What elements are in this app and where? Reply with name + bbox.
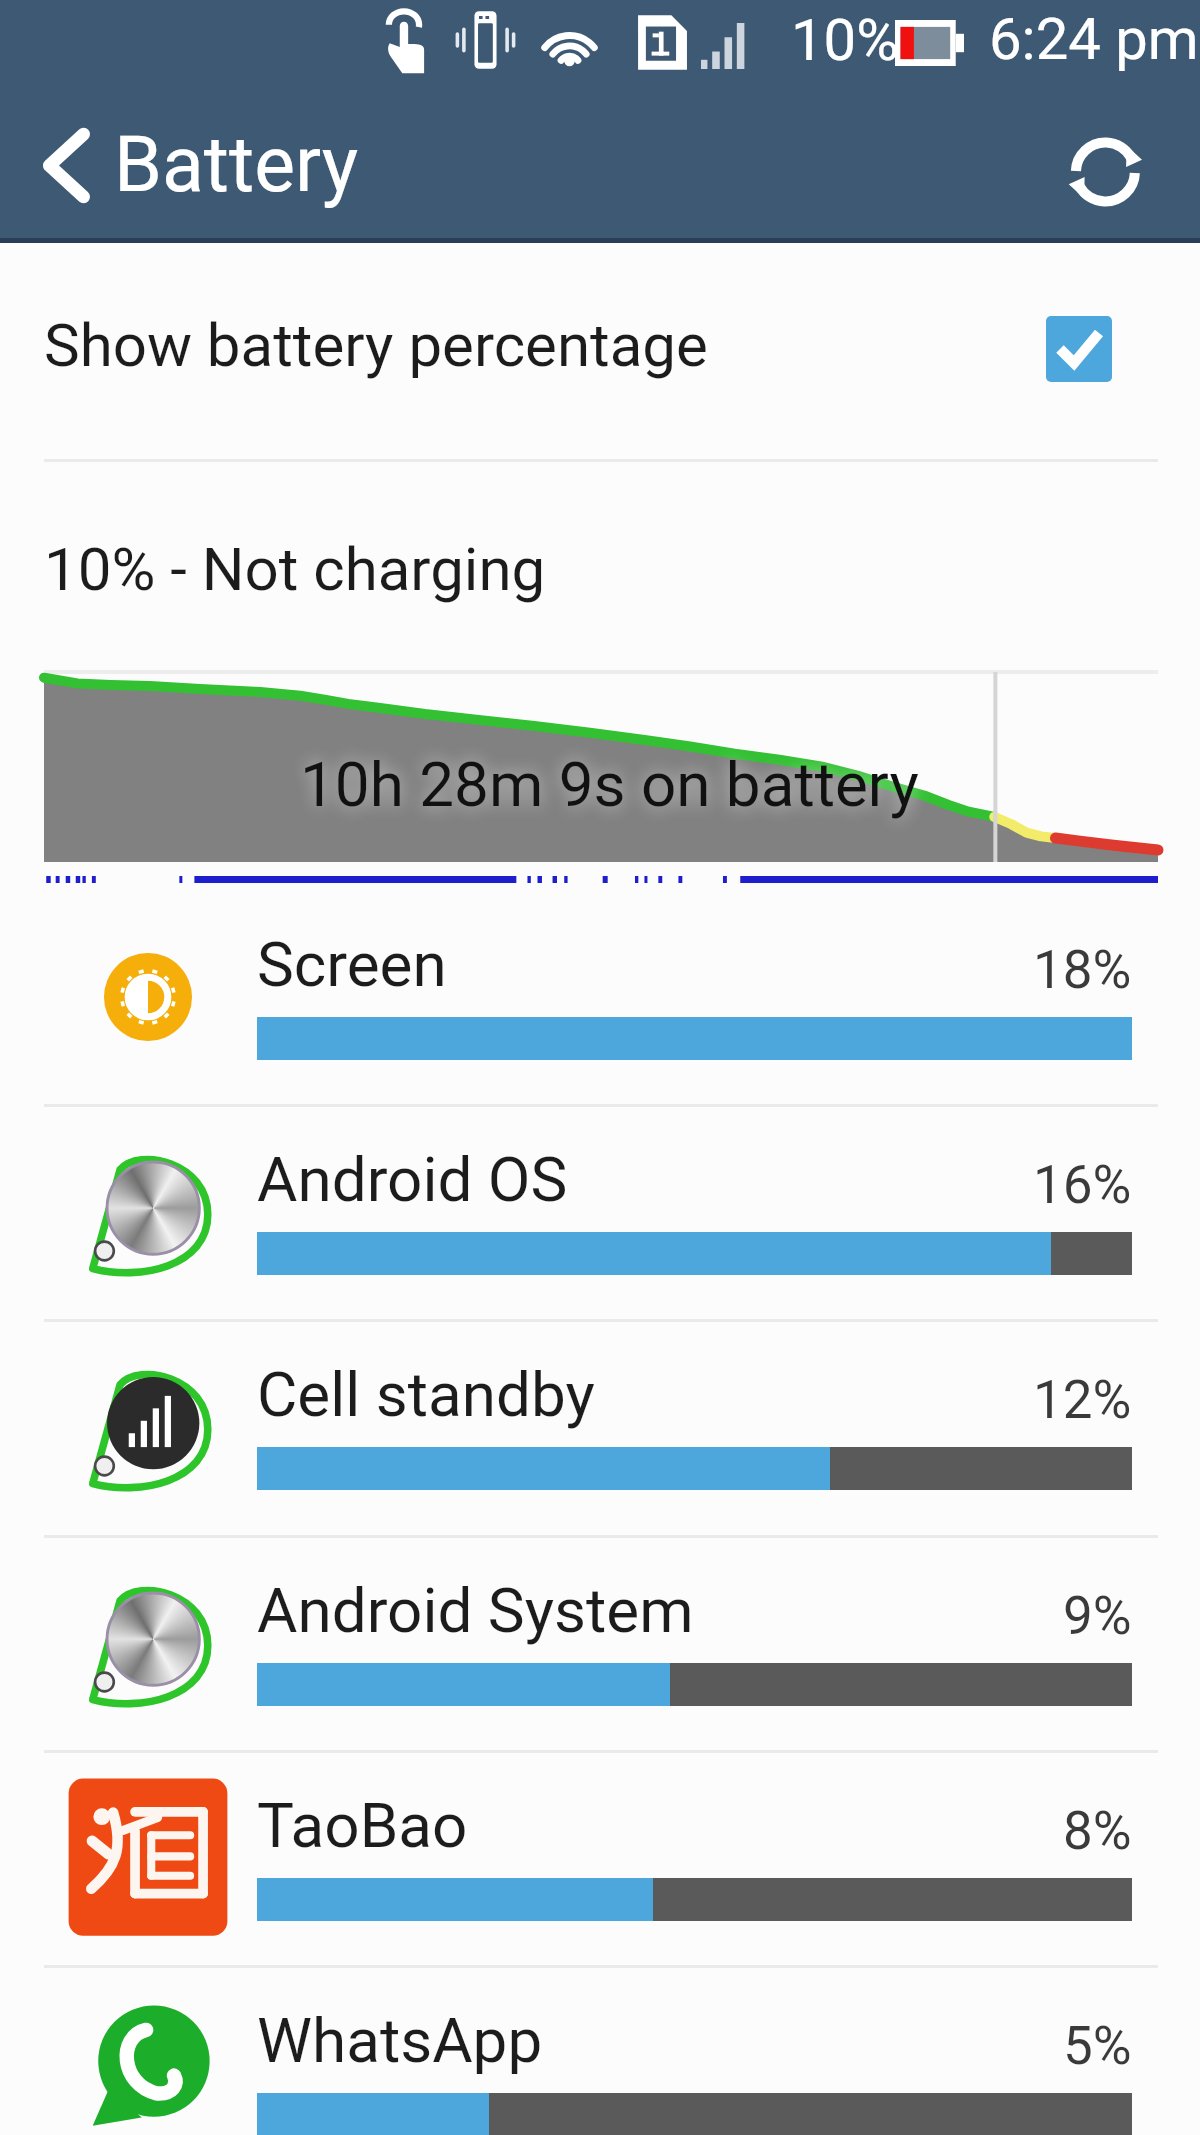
staticText: Cell standby xyxy=(257,1358,595,1431)
staticText: Show battery percentage xyxy=(44,310,708,380)
button[interactable]: WhatsApp xyxy=(0,1968,1200,2135)
staticText: 9% xyxy=(1063,1585,1132,1647)
staticText: 12% xyxy=(1033,1369,1132,1431)
button[interactable]: TaoBao xyxy=(0,1753,1200,1968)
button[interactable]: Show battery percentage xyxy=(0,243,1200,459)
staticText: 8% xyxy=(1063,1800,1132,1862)
staticText: 6:24 pm xyxy=(989,5,1199,73)
button[interactable]: Refresh xyxy=(1048,112,1168,232)
staticText: 16% xyxy=(1033,1154,1132,1216)
staticText: Screen xyxy=(257,928,447,1001)
button[interactable]: Android OS xyxy=(0,1107,1200,1322)
staticText: Battery xyxy=(114,120,359,210)
staticText: 5% xyxy=(1063,2015,1132,2077)
staticText: 10h 28m 9s on battery xyxy=(300,748,919,821)
staticText: 10% - Not charging xyxy=(44,534,546,604)
button[interactable]: Show battery percentage, checked xyxy=(1046,316,1112,382)
staticText: 18% xyxy=(1033,939,1132,1001)
button[interactable]: Cell standby xyxy=(0,1322,1200,1537)
staticText: TaoBao xyxy=(257,1789,468,1862)
button[interactable]: Screen xyxy=(0,892,1200,1107)
staticText: Android OS xyxy=(257,1143,568,1216)
staticText: WhatsApp xyxy=(257,2004,543,2077)
button[interactable]: Android System xyxy=(0,1538,1200,1753)
staticText: Android System xyxy=(257,1574,694,1647)
staticText: 10% xyxy=(791,6,899,74)
button[interactable]: Navigate up, Battery xyxy=(0,101,383,223)
